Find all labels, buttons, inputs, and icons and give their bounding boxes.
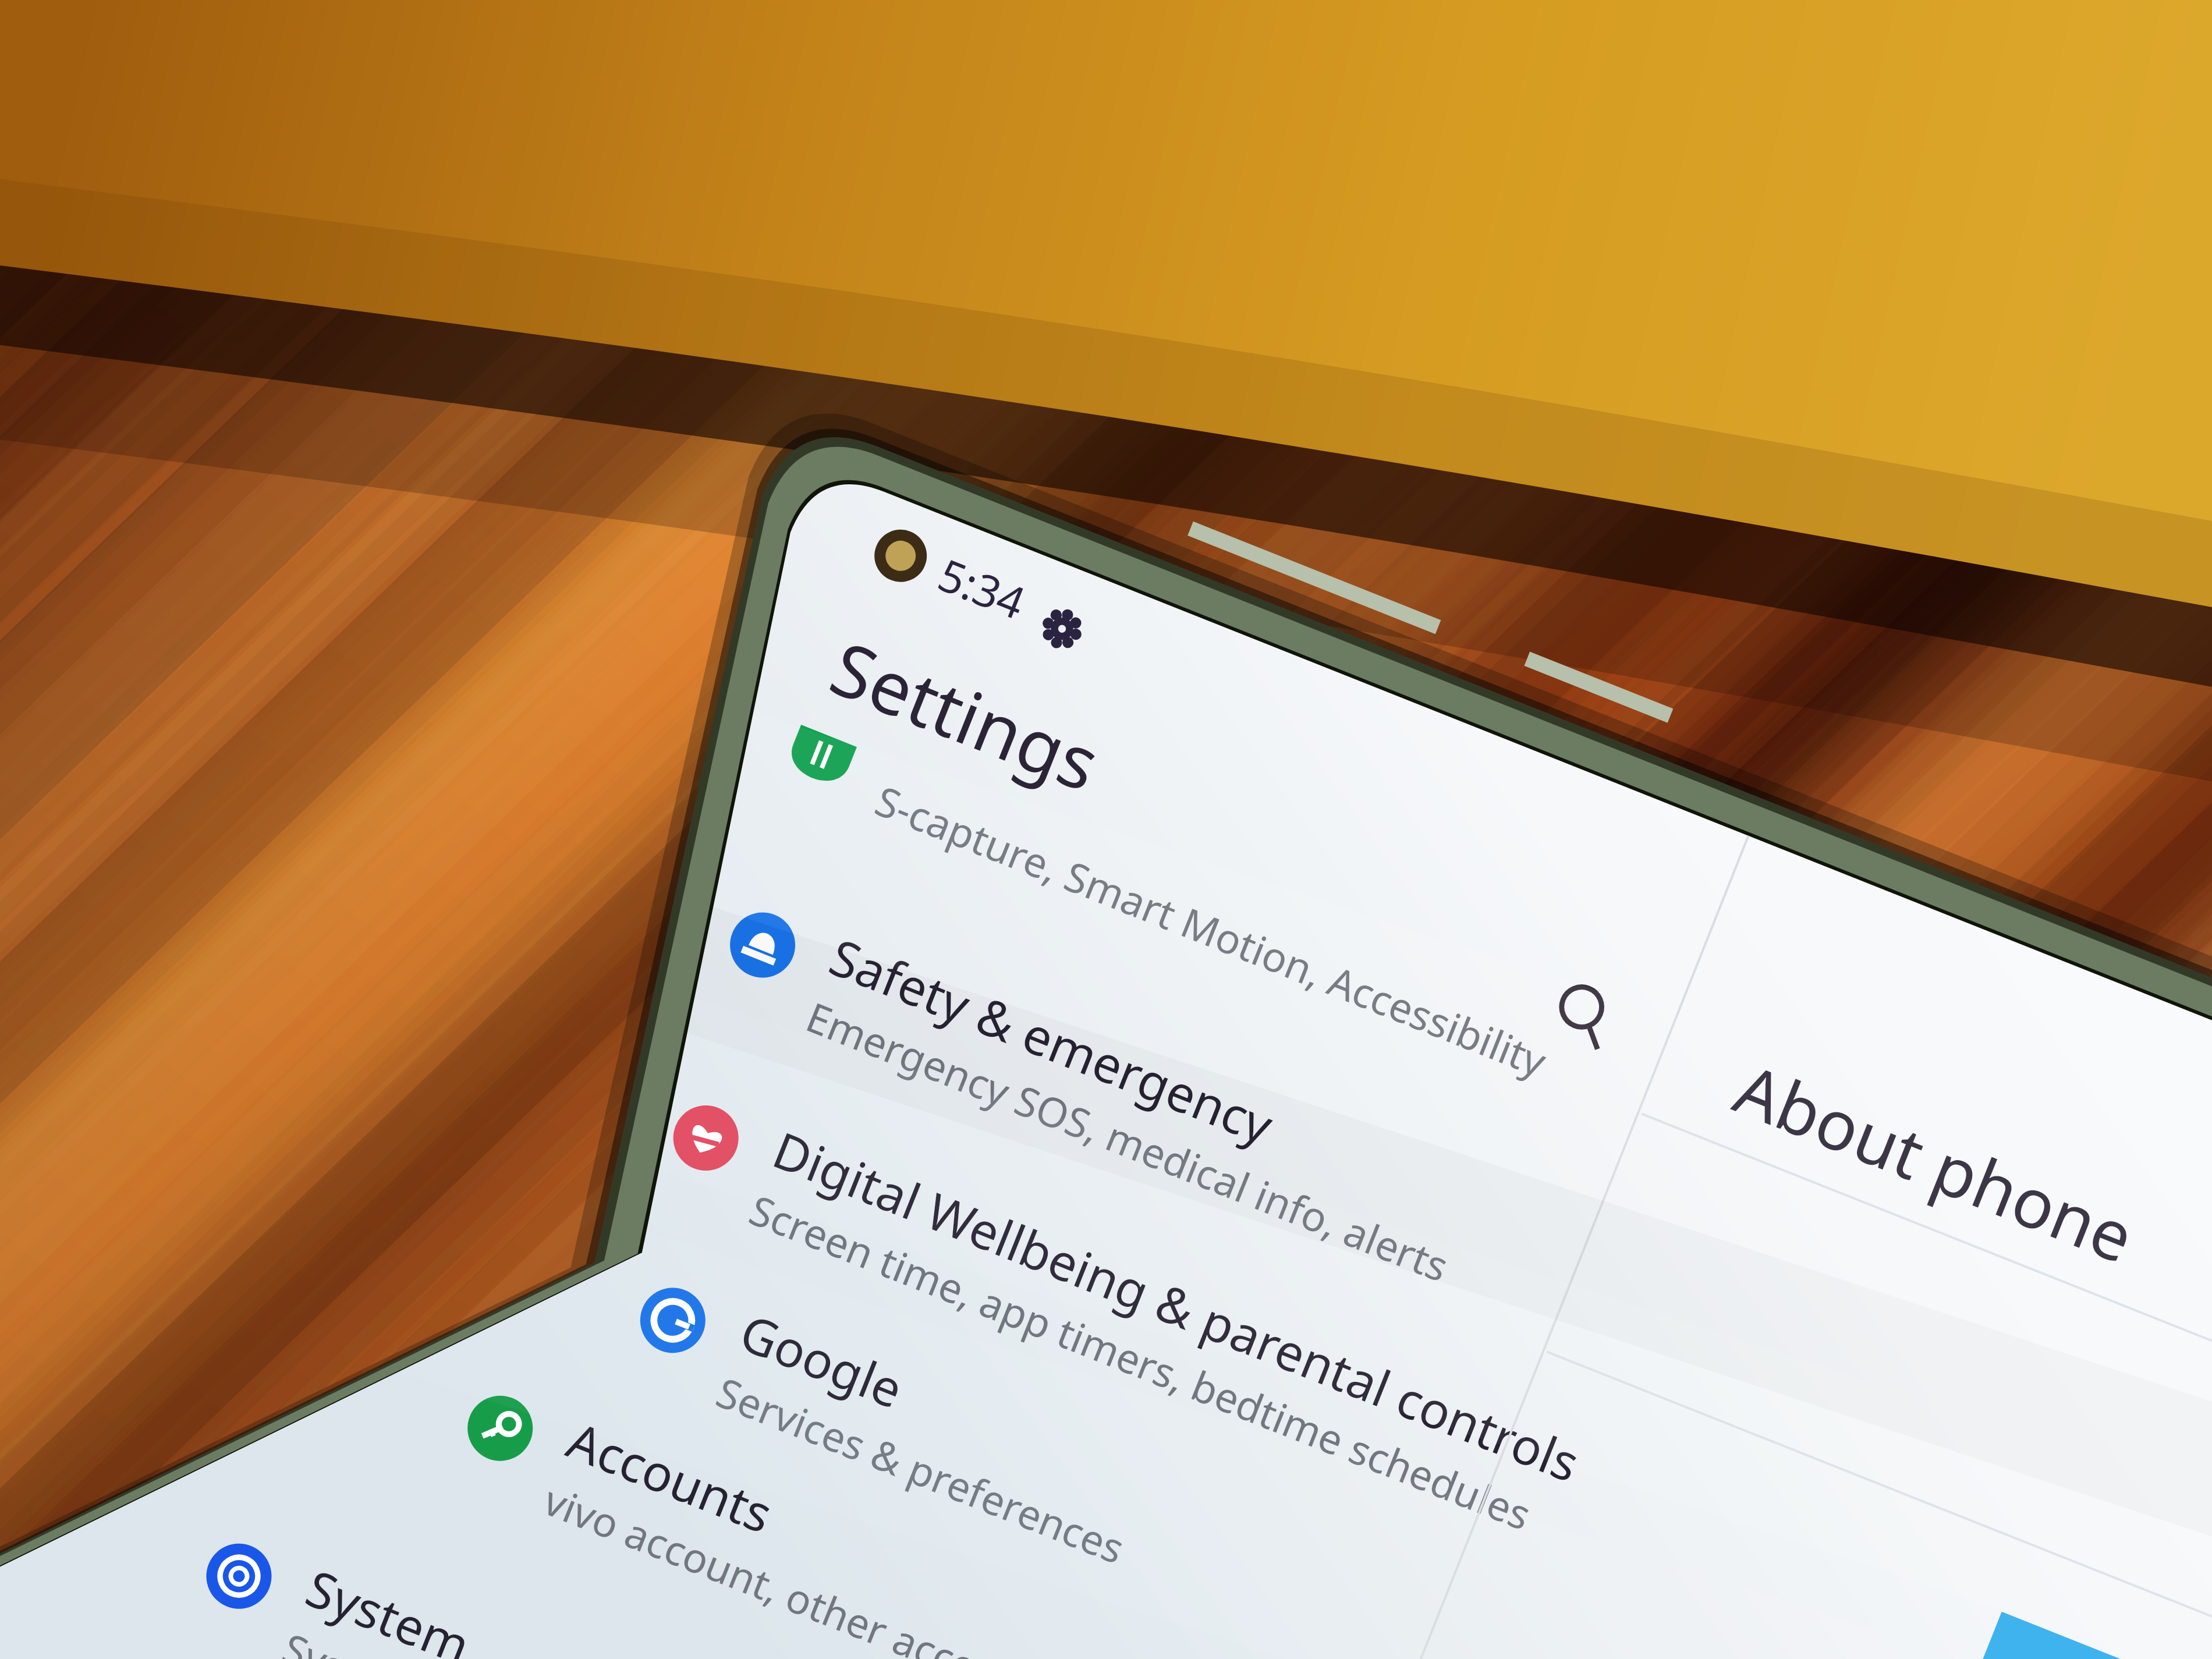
button[interactable]: About phone [1664,981,2212,1487]
staticText: Safety & emergency [821,922,1283,1159]
button[interactable]: Google [599,1214,1547,1659]
staticText: System update, languages [275,1619,766,1659]
button[interactable]: Search [1512,943,1656,1086]
button[interactable]: Safety & emergency [689,839,1637,1370]
staticText: 5:34 [930,544,1034,633]
staticText: About phone [1722,1041,2148,1283]
staticText: Services & preferences [709,1364,1133,1576]
button[interactable]: Quick settings [1026,582,1104,661]
button[interactable]: Accounts [426,1322,1375,1659]
button[interactable]: Digital Wellbeing & parental controls [632,1032,1580,1562]
staticText: Accounts [558,1405,783,1548]
button[interactable]: System [165,1470,1113,1659]
staticText: System [297,1553,481,1659]
button[interactable]: S-capture, Smart Motion, Accessibility [747,651,1695,1181]
staticText: Emergency SOS, medical info, alerts [799,988,1457,1293]
staticText: Google [731,1297,913,1423]
staticText: S-capture, Smart Motion, Accessibility [868,772,1555,1089]
staticText: Digital Wellbeing & parental controls [764,1115,1590,1497]
staticText: vivo account, other accounts [536,1472,1065,1659]
staticText: Settings [818,616,1114,813]
staticText: Screen time, app timers, bedtime schedul… [742,1181,1539,1542]
